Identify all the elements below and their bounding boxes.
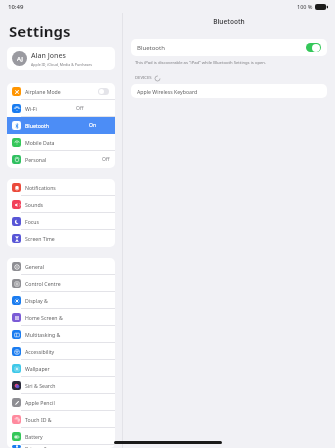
staticText: Control Centre xyxy=(25,280,61,287)
staticText: Off xyxy=(76,105,84,112)
button[interactable]: Accessibility xyxy=(7,343,115,360)
button[interactable]: Screen Time xyxy=(7,230,115,247)
staticText: Wi-Fi xyxy=(25,105,37,112)
button[interactable]: Bluetooth xyxy=(7,117,115,134)
staticText: On xyxy=(89,122,96,129)
button[interactable]: Privacy & Security xyxy=(7,445,115,448)
button[interactable]: AJ xyxy=(7,47,115,70)
staticText: Home Screen & App Library xyxy=(25,314,67,321)
button[interactable]: General xyxy=(7,258,115,275)
button[interactable]: Touch ID & Passcode xyxy=(7,411,115,428)
staticText: Multitasking & Gestures xyxy=(25,331,67,338)
staticText: Sounds xyxy=(25,201,44,208)
staticText: Bluetooth xyxy=(137,44,165,52)
button[interactable]: Multitasking & Gestures xyxy=(7,326,115,343)
button[interactable]: Apple Pencil xyxy=(7,394,115,411)
staticText: Screen Time xyxy=(25,235,55,242)
staticText: Privacy & Security xyxy=(25,445,67,448)
staticText: Focus xyxy=(25,218,40,225)
staticText: Mobile Data xyxy=(25,139,55,146)
staticText: Bluetooth xyxy=(25,122,50,129)
staticText: Alan Jones xyxy=(31,51,66,61)
staticText: General xyxy=(25,263,45,270)
staticText: 10:49 xyxy=(8,3,24,11)
button[interactable]: Notifications xyxy=(7,179,115,196)
staticText: Apple ID, iCloud, Media & Purchases xyxy=(31,62,93,67)
staticText: Siri & Search xyxy=(25,382,56,389)
staticText: DEVICES xyxy=(135,75,152,81)
staticText: Display & Brightness xyxy=(25,297,67,304)
button[interactable]: Sounds xyxy=(7,196,115,213)
button[interactable]: Siri & Search xyxy=(7,377,115,394)
button[interactable]: Toggle on xyxy=(306,43,321,52)
button[interactable]: Mobile Data xyxy=(7,134,115,151)
button[interactable]: Control Centre xyxy=(7,275,115,292)
staticText: Notifications xyxy=(25,184,56,191)
button[interactable]: Home Screen & App Library xyxy=(7,309,115,326)
staticText: Touch ID & Passcode xyxy=(25,416,67,423)
button[interactable]: Airplane Mode xyxy=(7,83,115,100)
staticText: 100 % xyxy=(297,3,313,10)
button[interactable]: Bluetooth xyxy=(131,39,327,56)
staticText: Off xyxy=(102,156,110,163)
staticText: This iPad is discoverable as “iPad” whil… xyxy=(135,60,267,66)
staticText: AJ xyxy=(17,55,23,63)
button[interactable]: Focus xyxy=(7,213,115,230)
staticText: Settings xyxy=(9,21,71,41)
staticText: Accessibility xyxy=(25,348,55,355)
button[interactable]: Wallpaper xyxy=(7,360,115,377)
staticText: Apple Pencil xyxy=(25,399,55,406)
staticText: Wallpaper xyxy=(25,365,50,372)
staticText: Battery xyxy=(25,433,43,440)
button[interactable]: Personal Hotspot xyxy=(7,151,115,168)
staticText: Airplane Mode xyxy=(25,88,61,95)
button[interactable]: Display & Brightness xyxy=(7,292,115,309)
button[interactable]: Wi-Fi xyxy=(7,100,115,117)
staticText: Apple Wireless Keyboard xyxy=(137,88,198,95)
staticText: Bluetooth xyxy=(213,17,245,26)
staticText: Personal Hotspot xyxy=(25,156,63,163)
button[interactable]: Toggle off xyxy=(98,88,109,95)
button[interactable]: Battery xyxy=(7,428,115,445)
button[interactable]: Apple Wireless Keyboard xyxy=(131,84,327,98)
